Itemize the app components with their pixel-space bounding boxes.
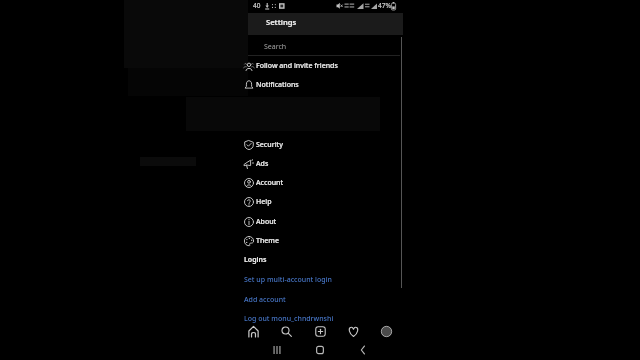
button[interactable]: About — [244, 212, 403, 231]
button[interactable]: Theme — [244, 231, 403, 250]
button[interactable]: Home — [237, 322, 269, 340]
staticText: About — [256, 217, 277, 227]
button[interactable]: Activity — [337, 322, 369, 340]
staticText: Search — [264, 42, 287, 52]
button[interactable]: Profile — [370, 322, 402, 340]
staticText: Notifications — [256, 80, 299, 90]
button[interactable]: Log out monu_chndrwnshi — [244, 309, 403, 328]
staticText: 40 — [253, 1, 261, 10]
staticText: 47% — [378, 1, 391, 10]
staticText: Theme — [256, 236, 279, 246]
staticText: Settings — [266, 17, 297, 27]
staticText: Ads — [256, 159, 269, 169]
button[interactable]: Security — [244, 135, 403, 154]
button[interactable]: Create — [304, 322, 336, 340]
staticText: Logins — [244, 255, 267, 265]
button[interactable]: Set up multi-account login — [244, 270, 403, 289]
button[interactable]: Notifications — [244, 75, 403, 94]
staticText: Account — [256, 178, 284, 188]
button[interactable]: Search — [270, 322, 302, 340]
staticText: Add account — [244, 295, 286, 305]
button[interactable]: Add account — [244, 290, 403, 309]
staticText: Log out monu_chndrwnshi — [244, 314, 334, 324]
button[interactable]: Recents — [270, 343, 284, 357]
button[interactable]: Account — [244, 173, 403, 192]
button[interactable]: Back — [356, 343, 370, 357]
button[interactable]: Help — [244, 192, 403, 211]
staticText: Help — [256, 197, 272, 207]
staticText: Security — [256, 140, 283, 150]
button[interactable]: Search — [248, 38, 403, 56]
button[interactable]: Ads — [244, 154, 403, 173]
button[interactable]: Follow and invite friends — [244, 56, 403, 75]
staticText: Follow and invite friends — [256, 61, 338, 71]
staticText: Set up multi-account login — [244, 275, 332, 285]
button[interactable]: Home — [313, 343, 327, 357]
